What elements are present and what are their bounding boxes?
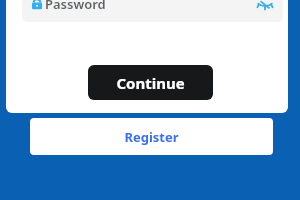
button[interactable]: Continue xyxy=(88,65,213,100)
staticText: Continue xyxy=(116,73,185,93)
button[interactable]: Password xyxy=(22,0,283,22)
staticText: Password xyxy=(45,0,106,13)
staticText: Register xyxy=(124,128,179,146)
button[interactable]: Register xyxy=(30,118,273,155)
button[interactable]: Show password xyxy=(255,0,275,14)
